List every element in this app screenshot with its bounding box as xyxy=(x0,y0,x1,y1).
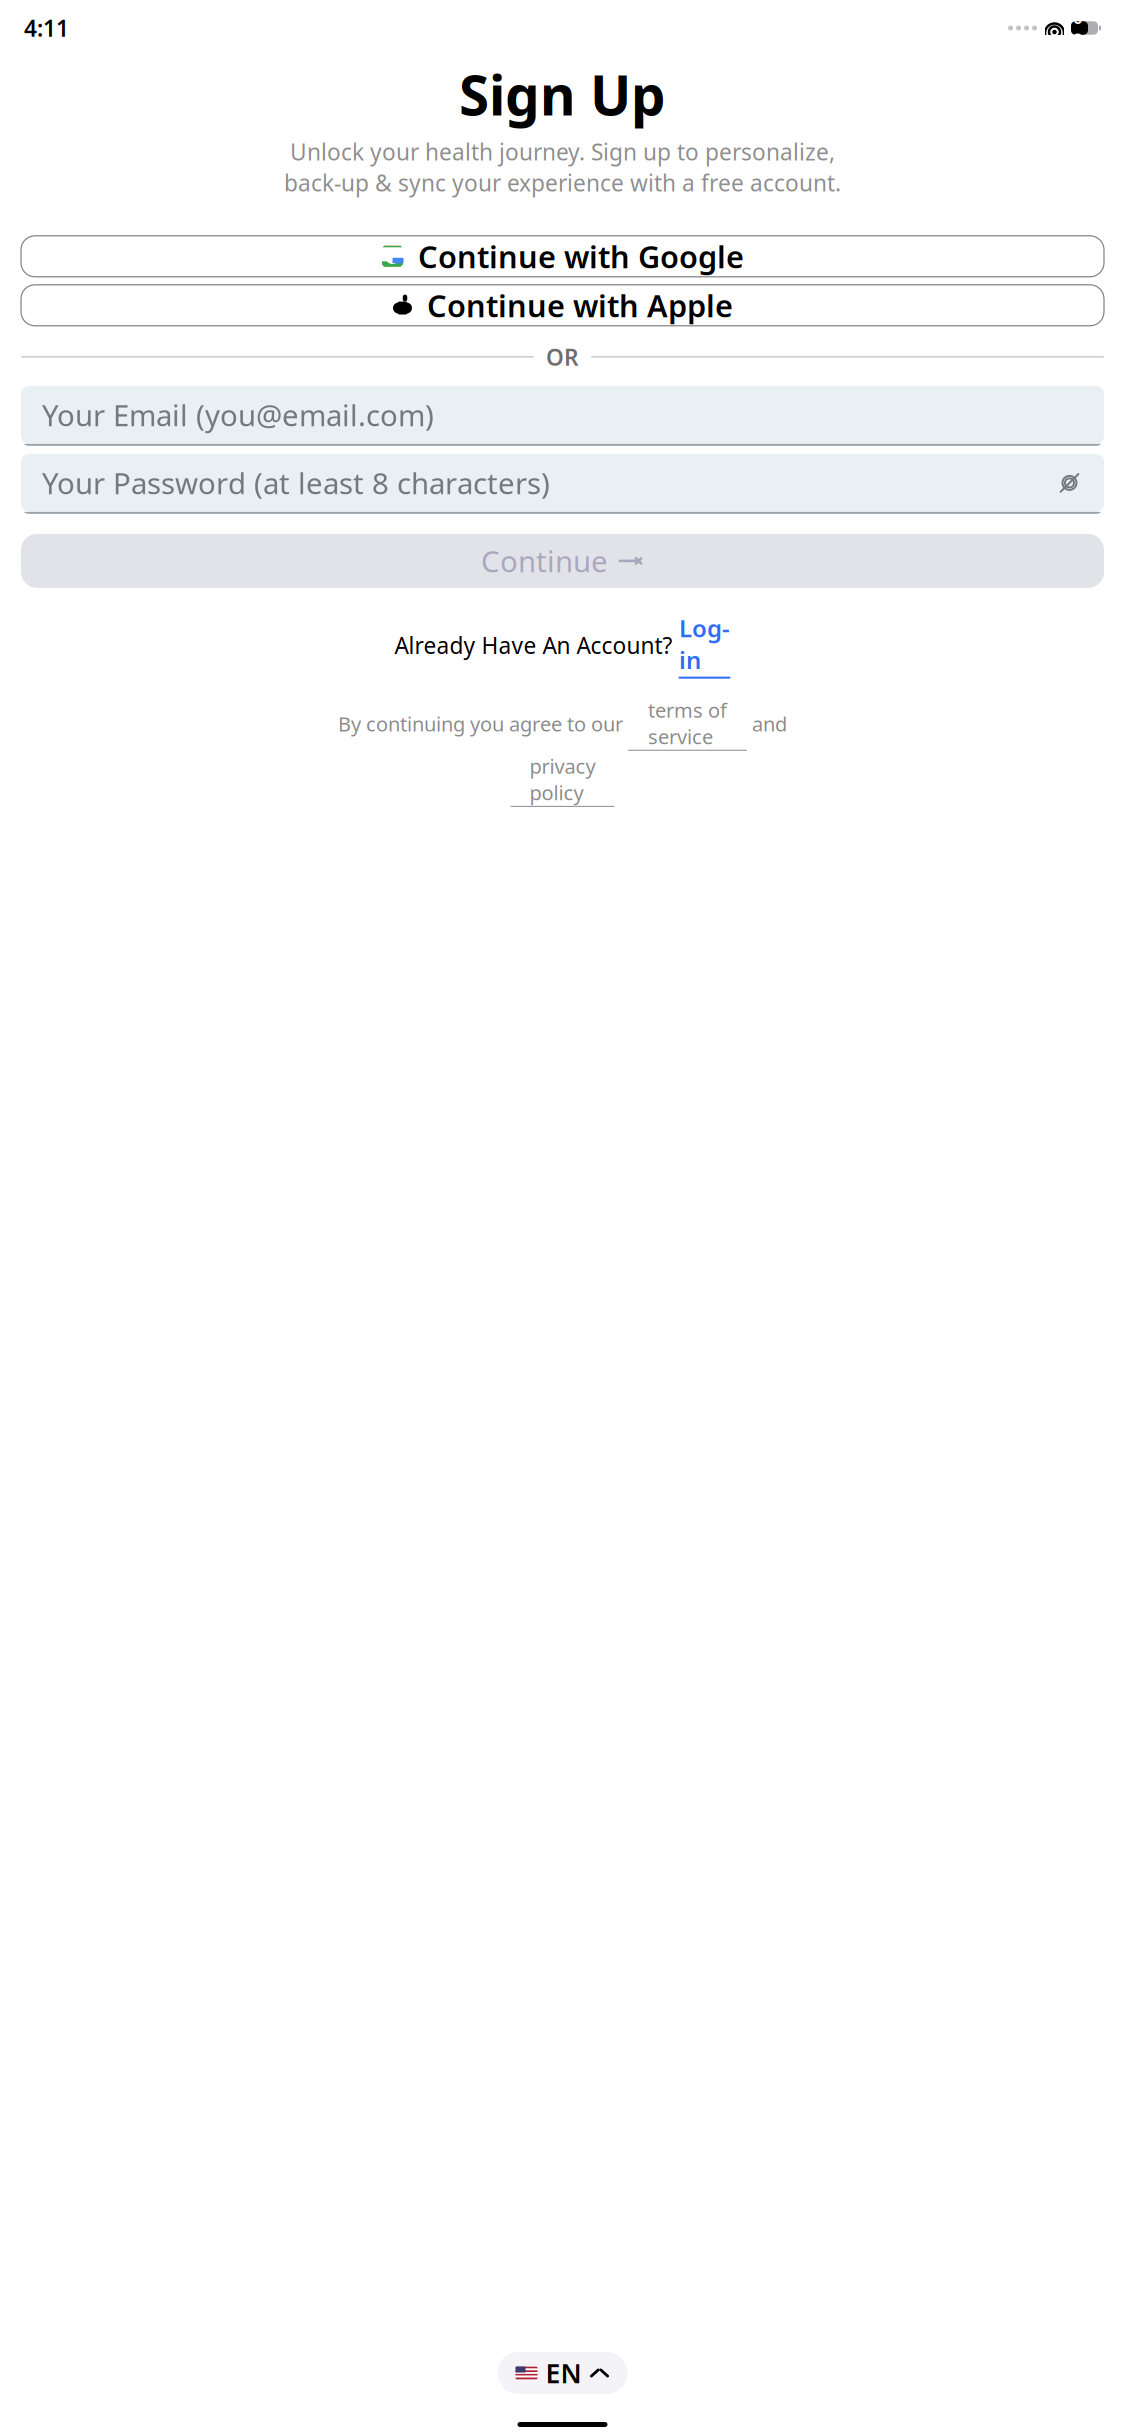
button[interactable]: Continue with Google xyxy=(21,236,1104,277)
button[interactable]: Continue xyxy=(21,534,1104,588)
button[interactable]: privacy policy xyxy=(510,753,614,807)
staticText: 4:11 xyxy=(24,13,69,43)
staticText: back-up & sync your experience with a fr… xyxy=(284,168,841,198)
staticText: privacy policy xyxy=(529,753,595,806)
button[interactable]: Your Password (at least 8 characters) xyxy=(21,454,1104,514)
staticText: Continue with Apple xyxy=(427,285,733,326)
staticText: and xyxy=(747,710,787,737)
staticText: By continuing you agree to our xyxy=(338,710,628,737)
staticText: OR xyxy=(546,342,579,372)
button[interactable]: Login xyxy=(678,612,730,679)
staticText: Continue with Google xyxy=(418,236,744,277)
button[interactable]: terms of service xyxy=(628,697,747,751)
staticText: Your Email (you@email.com) xyxy=(42,395,434,434)
button[interactable]: Your Email (you@email.com) xyxy=(21,386,1104,446)
staticText: Login xyxy=(679,612,730,676)
button[interactable]: Continue with Apple xyxy=(21,285,1104,326)
staticText: Continue xyxy=(481,541,608,580)
staticText: 62 xyxy=(1073,8,1081,47)
button[interactable]: EN xyxy=(497,2352,627,2394)
staticText: Sign Up xyxy=(459,58,666,131)
staticText: Your Password (at least 8 characters) xyxy=(42,463,550,502)
staticText: EN xyxy=(545,2355,581,2391)
staticText: Already Have An Account? xyxy=(394,630,678,660)
staticText: terms of service xyxy=(648,697,727,750)
staticText: Unlock your health journey. Sign up to p… xyxy=(290,137,835,167)
